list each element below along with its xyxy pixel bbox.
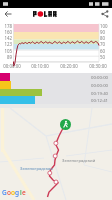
staticText: 60	[100, 48, 112, 54]
staticText: 00:30:00	[87, 63, 109, 69]
staticText: 178	[0, 23, 12, 29]
staticText: 100	[100, 23, 112, 29]
staticText: 142	[0, 35, 12, 41]
staticText: e	[22, 188, 26, 197]
staticText: Зеленоградский	[62, 158, 96, 164]
button[interactable]: Back	[0, 8, 17, 20]
staticText: Зеленоградская	[20, 166, 53, 172]
staticText: 70	[100, 41, 112, 47]
button[interactable]: 00:19:40	[0, 89, 112, 96]
staticText: 00:10:00	[29, 63, 51, 69]
staticText: 00:00:00	[91, 82, 109, 88]
button[interactable]: Route start	[60, 119, 71, 130]
staticText: 00:19:40	[91, 90, 109, 96]
staticText: o	[11, 188, 15, 197]
staticText: 00:00:00	[91, 74, 109, 80]
staticText: g	[15, 188, 20, 197]
staticText: 89	[0, 54, 12, 60]
staticText: 90	[100, 29, 112, 35]
staticText: 160	[0, 29, 12, 35]
staticText: 123	[0, 41, 12, 47]
staticText: 00:12:41	[91, 97, 109, 103]
staticText: 00:20:00	[58, 63, 80, 69]
staticText: 50	[100, 54, 112, 60]
staticText: l	[20, 188, 22, 197]
button[interactable]: 00:12:41	[0, 96, 112, 104]
staticText: 105	[0, 48, 12, 54]
staticText: G	[2, 188, 7, 197]
button[interactable]: 00:00:00	[0, 73, 112, 81]
staticText: o	[7, 188, 11, 197]
staticText: 00:00:00	[1, 63, 23, 69]
staticText: 80	[100, 35, 112, 41]
button[interactable]: 00:00:00	[0, 81, 112, 89]
button[interactable]: Share	[98, 8, 112, 20]
